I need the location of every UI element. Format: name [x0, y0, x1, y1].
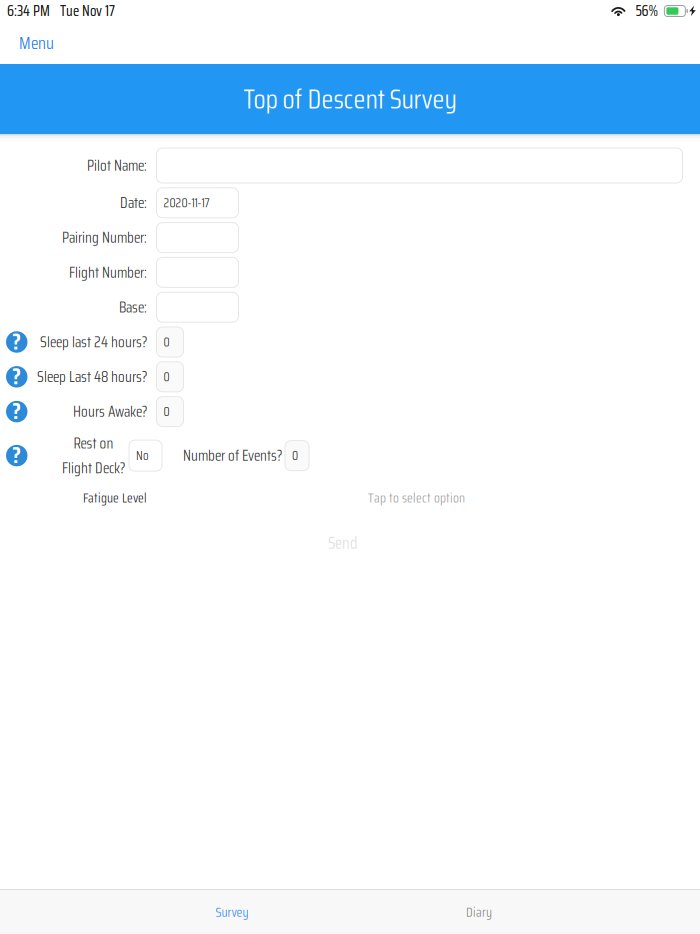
staticText: 0 [163, 402, 169, 421]
staticText: Sleep last 24 hours? [40, 330, 147, 354]
button[interactable]: 2020-11-17 [156, 188, 238, 218]
staticText: Tap to select option [368, 487, 465, 508]
staticText: Flight Number: [69, 260, 147, 284]
staticText: ? [12, 324, 21, 359]
staticText: 56% [635, 0, 658, 23]
staticText: Pilot Name: [87, 154, 147, 177]
staticText: Pairing Number: [62, 226, 147, 249]
button[interactable]: Help [6, 331, 27, 353]
button[interactable]: Help [6, 401, 27, 422]
staticText: Flight Deck? [62, 456, 125, 480]
staticText: Menu [19, 29, 54, 57]
button[interactable]: Help [6, 445, 27, 466]
staticText: No [136, 446, 149, 465]
staticText: Date: [120, 191, 147, 215]
staticText: Diary [466, 901, 492, 922]
staticText: ? [12, 358, 21, 394]
staticText: ? [12, 437, 21, 473]
button[interactable]: 0 [285, 441, 309, 471]
staticText: Number of Events? [183, 444, 282, 467]
button[interactable]: Send [310, 524, 376, 562]
staticText: 0 [163, 367, 169, 387]
button[interactable]: 0 [156, 397, 183, 427]
button[interactable]: Help [6, 366, 27, 388]
button[interactable]: Survey [101, 890, 363, 934]
staticText: 6:34 PM [7, 0, 50, 23]
button[interactable]: No [129, 440, 162, 471]
staticText: Base: [119, 295, 147, 319]
staticText: 0 [292, 446, 298, 465]
staticText: Rest on [73, 431, 113, 455]
button[interactable]: Text field [156, 148, 682, 183]
staticText: 2020-11-17 [163, 193, 209, 213]
staticText: Fatigue Level [83, 487, 147, 508]
button[interactable]: Diary [363, 890, 595, 934]
staticText: Sleep Last 48 hours? [37, 365, 147, 389]
staticText: Hours Awake? [73, 400, 147, 423]
button[interactable]: Text field [156, 223, 238, 253]
staticText: Send [328, 530, 358, 556]
button[interactable]: Fatigue Level [0, 487, 700, 509]
button[interactable]: Text field [156, 292, 238, 322]
button[interactable]: 0 [156, 362, 183, 392]
button[interactable]: Text field [156, 257, 238, 287]
staticText: Tue Nov 17 [60, 0, 115, 23]
staticText: ? [12, 393, 21, 429]
button[interactable]: 0 [156, 327, 183, 357]
staticText: 0 [163, 332, 169, 352]
staticText: Survey [215, 901, 248, 922]
button[interactable]: Menu [11, 21, 62, 65]
staticText: Top of Descent Survey [243, 77, 456, 120]
